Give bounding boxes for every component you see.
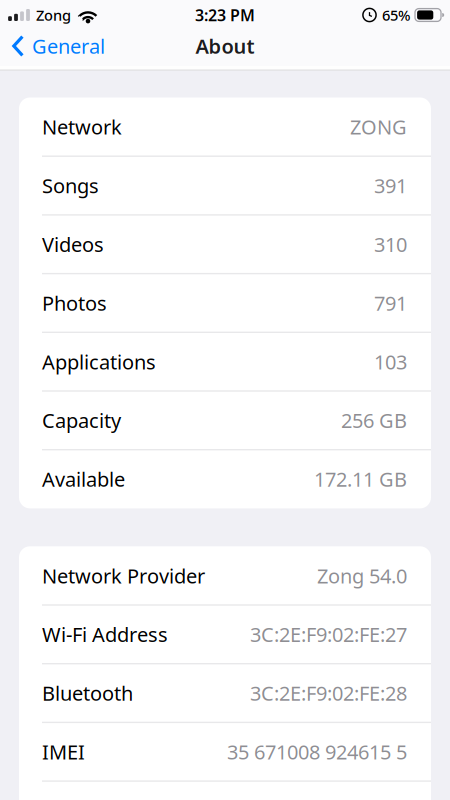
staticText: General	[32, 33, 105, 59]
button[interactable]: Songs	[19, 156, 431, 215]
button[interactable]: Network Provider	[19, 546, 431, 605]
staticText: 791	[374, 290, 407, 316]
staticText: Capacity	[42, 407, 121, 434]
staticText: 172.11 GB	[314, 466, 407, 492]
button[interactable]: General	[0, 33, 105, 59]
staticText: Videos	[42, 231, 104, 258]
staticText: 103	[374, 348, 407, 375]
staticText: About	[195, 33, 254, 59]
button[interactable]: Available	[19, 450, 431, 508]
staticText: Wi-Fi Address	[42, 621, 168, 648]
staticText: 3C:2E:F9:02:FE:28	[250, 680, 407, 706]
staticText: ZONG	[350, 114, 407, 140]
staticText: Available	[42, 466, 125, 492]
staticText: 3:23 PM	[195, 4, 255, 26]
staticText: 256 GB	[341, 407, 407, 434]
staticText: 3C:2E:F9:02:FE:27	[250, 621, 407, 648]
staticText: 391	[374, 172, 407, 199]
staticText: IMEI	[42, 738, 85, 765]
button[interactable]: Photos	[19, 274, 431, 332]
button[interactable]: Capacity	[19, 391, 431, 450]
staticText: Bluetooth	[42, 680, 133, 706]
staticText: Network Provider	[42, 562, 205, 589]
button[interactable]: Wi-Fi Address	[19, 605, 431, 664]
button[interactable]: Applications	[19, 332, 431, 391]
staticText: Zong	[36, 5, 71, 25]
staticText: Photos	[42, 290, 107, 316]
staticText: Network	[42, 114, 122, 140]
staticText: 65%	[382, 5, 410, 25]
button[interactable]: Model Number	[19, 781, 431, 800]
staticText: Zong 54.0	[317, 562, 407, 589]
staticText: Applications	[42, 348, 156, 375]
button[interactable]: IMEI	[19, 722, 431, 781]
staticText: Songs	[42, 172, 99, 199]
button[interactable]: Bluetooth	[19, 664, 431, 722]
button[interactable]: Network	[19, 97, 431, 156]
button[interactable]: Videos	[19, 215, 431, 274]
staticText: 35 671008 924615 5	[227, 738, 407, 765]
staticText: 310	[374, 231, 407, 258]
